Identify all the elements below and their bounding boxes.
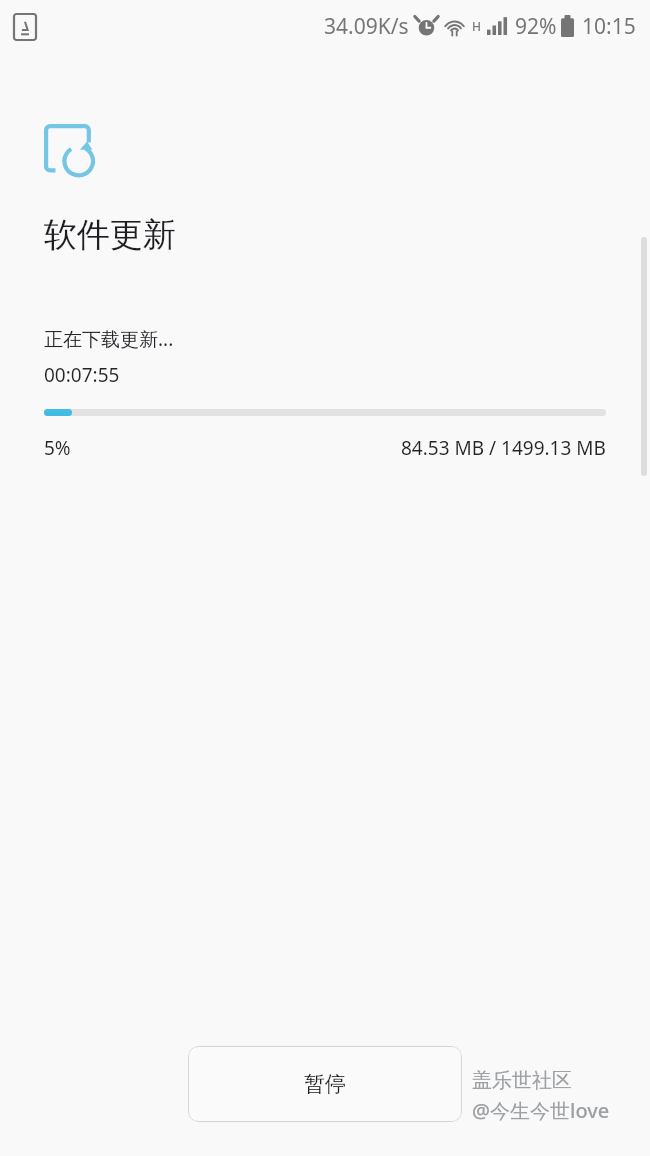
button[interactable]: 暂停 [188,1046,462,1122]
staticText: 正在下载更新... [44,326,174,352]
staticText: 暂停 [304,1071,346,1097]
staticText: 5% [44,435,71,461]
staticText: 00:07:55 [44,362,120,388]
staticText: @今生今世love [472,1097,610,1124]
staticText: 10:15 [582,12,636,41]
staticText: 盖乐世社区 [472,1068,572,1093]
staticText: 92% [515,12,557,41]
other: Notification [14,14,36,40]
staticText: 34.09K/s [324,12,409,41]
staticText: 84.53 MB / 1499.13 MB [401,435,606,461]
staticText: H [472,18,481,34]
staticText: 软件更新 [44,214,176,256]
